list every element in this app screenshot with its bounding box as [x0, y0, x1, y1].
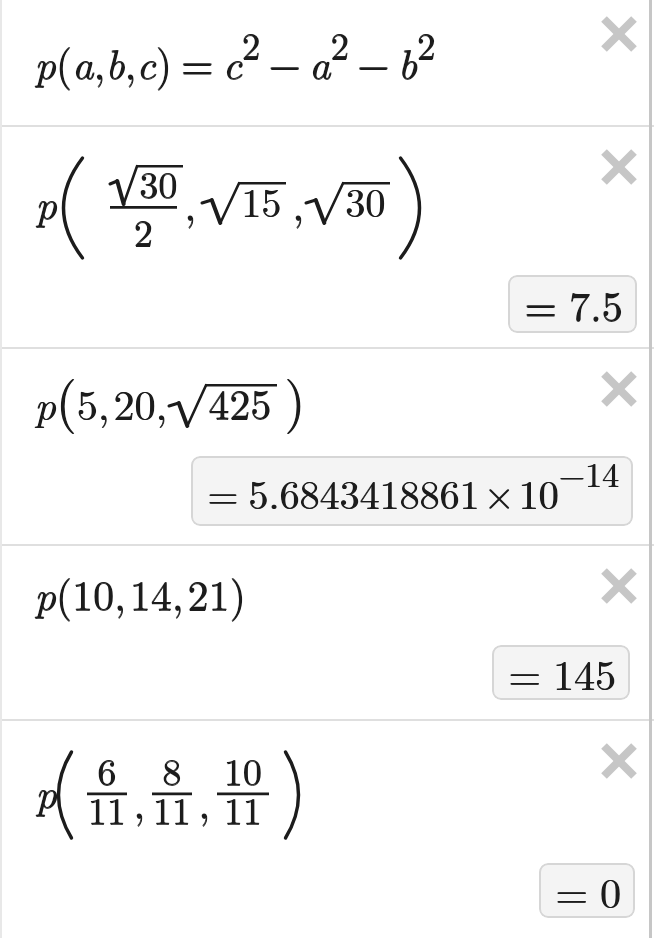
button[interactable]: [600, 148, 638, 186]
button[interactable]: [191, 456, 633, 526]
button[interactable]: [600, 567, 638, 605]
button[interactable]: [492, 645, 630, 700]
button[interactable]: [0, 546, 654, 719]
button[interactable]: [600, 742, 638, 780]
button[interactable]: [508, 275, 637, 333]
button[interactable]: [600, 15, 638, 53]
button[interactable]: [0, 0, 654, 125]
button[interactable]: [0, 349, 654, 544]
button[interactable]: [0, 127, 654, 347]
button[interactable]: [539, 863, 635, 918]
button[interactable]: [0, 721, 654, 938]
button[interactable]: [600, 370, 638, 408]
